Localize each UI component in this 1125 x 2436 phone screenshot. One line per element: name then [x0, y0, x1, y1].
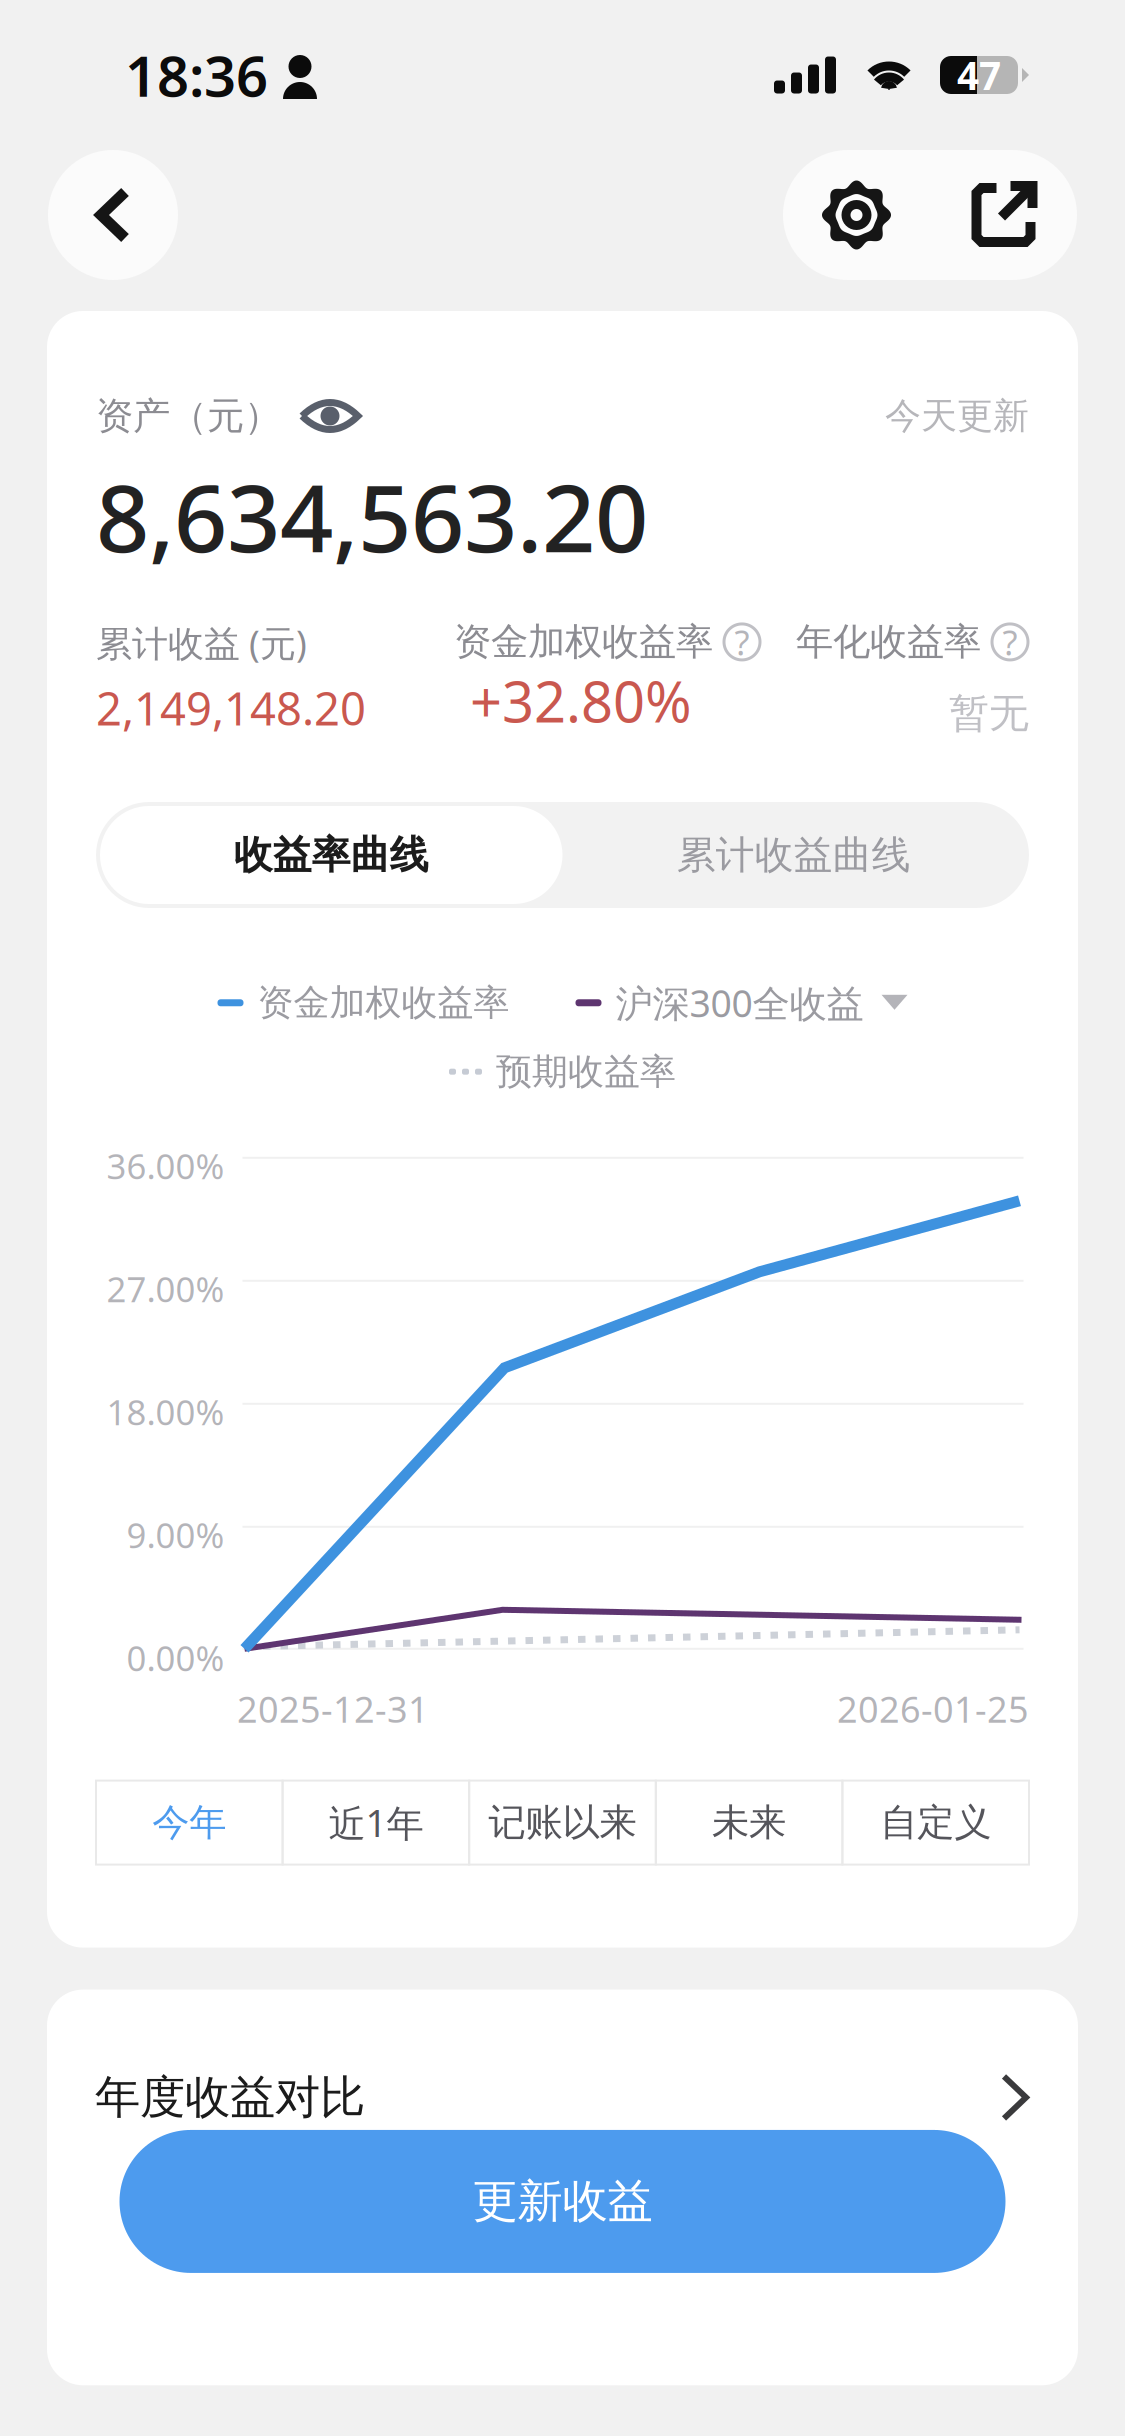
staticText: +32.80%: [470, 664, 692, 738]
staticText: 收益率曲线: [234, 831, 429, 879]
staticText: 27.00%: [106, 1266, 224, 1312]
button[interactable]: Toggle balance visibility: [299, 396, 361, 436]
staticText: 资金加权收益率: [454, 619, 713, 665]
staticText: 累计收益曲线: [677, 831, 911, 879]
staticText: 2,149,148.20: [96, 678, 366, 738]
staticText: 9.00%: [126, 1512, 224, 1558]
staticText: ?: [1002, 619, 1017, 665]
staticText: 未来: [712, 1800, 786, 1846]
staticText: 2025-12-31: [237, 1685, 429, 1733]
staticText: 近1年: [328, 1798, 423, 1847]
staticText: 8,634,563.20: [96, 454, 648, 578]
button[interactable]: 年度收益对比: [95, 1990, 1030, 2125]
staticText: 沪深300全收益: [615, 978, 863, 1028]
button[interactable]: 更新收益: [119, 2130, 1005, 2273]
staticText: 今年: [152, 1800, 226, 1846]
button[interactable]: 自定义: [842, 1781, 1029, 1865]
staticText: 更新收益: [472, 2174, 652, 2229]
staticText: 预期收益率: [496, 1050, 676, 1094]
button[interactable]: 收益率曲线: [100, 806, 562, 904]
staticText: 累计收益 (元): [96, 619, 307, 667]
button[interactable]: 累计收益曲线: [562, 806, 1025, 904]
staticText: 记账以来: [488, 1800, 636, 1846]
button[interactable]: 未来: [656, 1781, 842, 1865]
staticText: 资金加权收益率: [257, 981, 509, 1025]
staticText: 今天更新: [885, 394, 1029, 438]
staticText: 年化收益率: [796, 619, 981, 665]
button[interactable]: 记账以来: [469, 1781, 656, 1865]
staticText: ?: [734, 619, 749, 665]
staticText: 18:36: [125, 38, 268, 112]
staticText: 18.00%: [106, 1389, 224, 1435]
staticText: 47: [957, 49, 1001, 101]
button[interactable]: 今年: [96, 1781, 283, 1865]
staticText: 资产（元）: [96, 393, 281, 439]
staticText: 2026-01-25: [837, 1685, 1029, 1733]
staticText: 自定义: [880, 1800, 991, 1846]
button[interactable]: Share: [930, 150, 1077, 280]
button[interactable]: 近1年: [283, 1781, 469, 1865]
button[interactable]: Settings: [783, 150, 930, 280]
staticText: 年度收益对比: [95, 2070, 365, 2125]
staticText: 0.00%: [126, 1635, 224, 1681]
staticText: 暂无: [949, 689, 1029, 738]
button[interactable]: Back: [48, 150, 178, 280]
staticText: 36.00%: [106, 1143, 224, 1189]
